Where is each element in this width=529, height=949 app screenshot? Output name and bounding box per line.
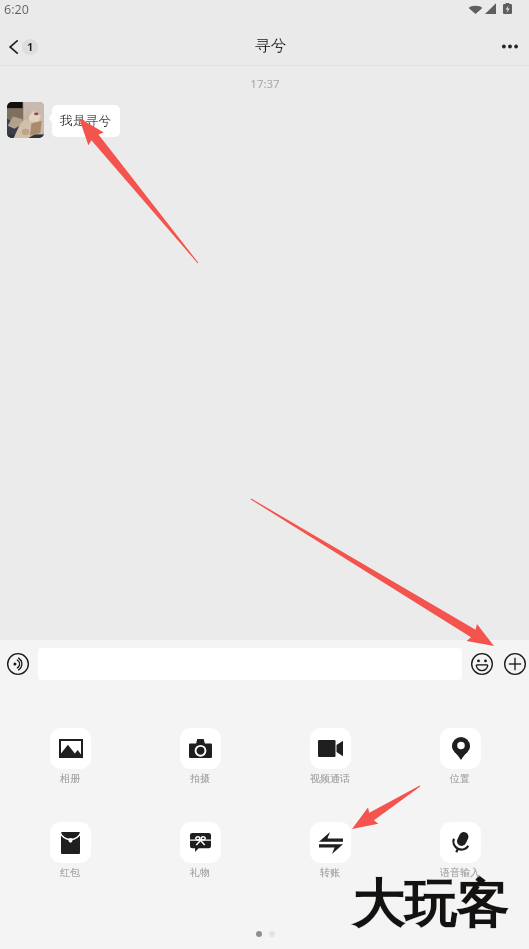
- button[interactable]: 礼物: [168, 822, 232, 879]
- staticText: 17:37: [250, 76, 280, 92]
- button[interactable]: Voice input: [7, 653, 29, 675]
- button[interactable]: More options: [493, 30, 527, 64]
- staticText: 转账: [320, 866, 340, 879]
- button[interactable]: Avatar of 寻兮: [7, 102, 44, 138]
- button[interactable]: Emoji: [471, 653, 493, 675]
- staticText: 礼物: [190, 866, 210, 879]
- staticText: 位置: [450, 772, 470, 785]
- button[interactable]: 视频通话: [298, 728, 362, 785]
- button[interactable]: 转账: [298, 822, 362, 879]
- staticText: 红包: [60, 866, 80, 879]
- button[interactable]: 红包: [38, 822, 102, 879]
- staticText: 拍摄: [190, 772, 210, 785]
- staticText: 相册: [60, 772, 80, 785]
- staticText: 寻兮: [255, 36, 287, 56]
- button[interactable]: 拍摄: [168, 728, 232, 785]
- button[interactable]: 语音输入: [428, 822, 492, 879]
- button[interactable]: 位置: [428, 728, 492, 785]
- staticText: 6:20: [4, 1, 29, 18]
- staticText: 1: [27, 39, 34, 54]
- staticText: 视频通话: [310, 772, 350, 785]
- button[interactable]: Back, 1 unread chat: [9, 32, 38, 62]
- button[interactable]: More functions: [504, 653, 526, 675]
- button[interactable]: 我是寻兮: [52, 105, 120, 137]
- staticText: 大玩客: [352, 872, 508, 938]
- staticText: 语音输入: [440, 866, 480, 879]
- staticText: 我是寻兮: [60, 113, 112, 129]
- button[interactable]: 相册: [38, 728, 102, 785]
